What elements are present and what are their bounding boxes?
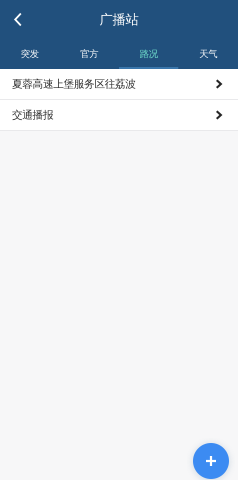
button[interactable]: 突发 <box>0 39 59 69</box>
button[interactable]: Add <box>193 443 229 479</box>
button[interactable]: 天气 <box>178 39 238 69</box>
button[interactable]: 路况 <box>119 39 178 69</box>
staticText: 官方 <box>80 48 98 60</box>
button[interactable]: 交通播报 <box>0 100 238 131</box>
staticText: 路况 <box>140 48 158 60</box>
staticText: 交通播报 <box>12 108 54 121</box>
staticText: 广播站 <box>99 11 138 28</box>
button[interactable]: 夏蓉高速上堡服务区往荔波 <box>0 69 238 100</box>
button[interactable]: 官方 <box>59 39 119 69</box>
staticText: 夏蓉高速上堡服务区往荔波 <box>12 77 136 90</box>
staticText: 突发 <box>21 48 39 60</box>
button[interactable]: Back <box>0 0 36 39</box>
staticText: 天气 <box>199 48 217 60</box>
